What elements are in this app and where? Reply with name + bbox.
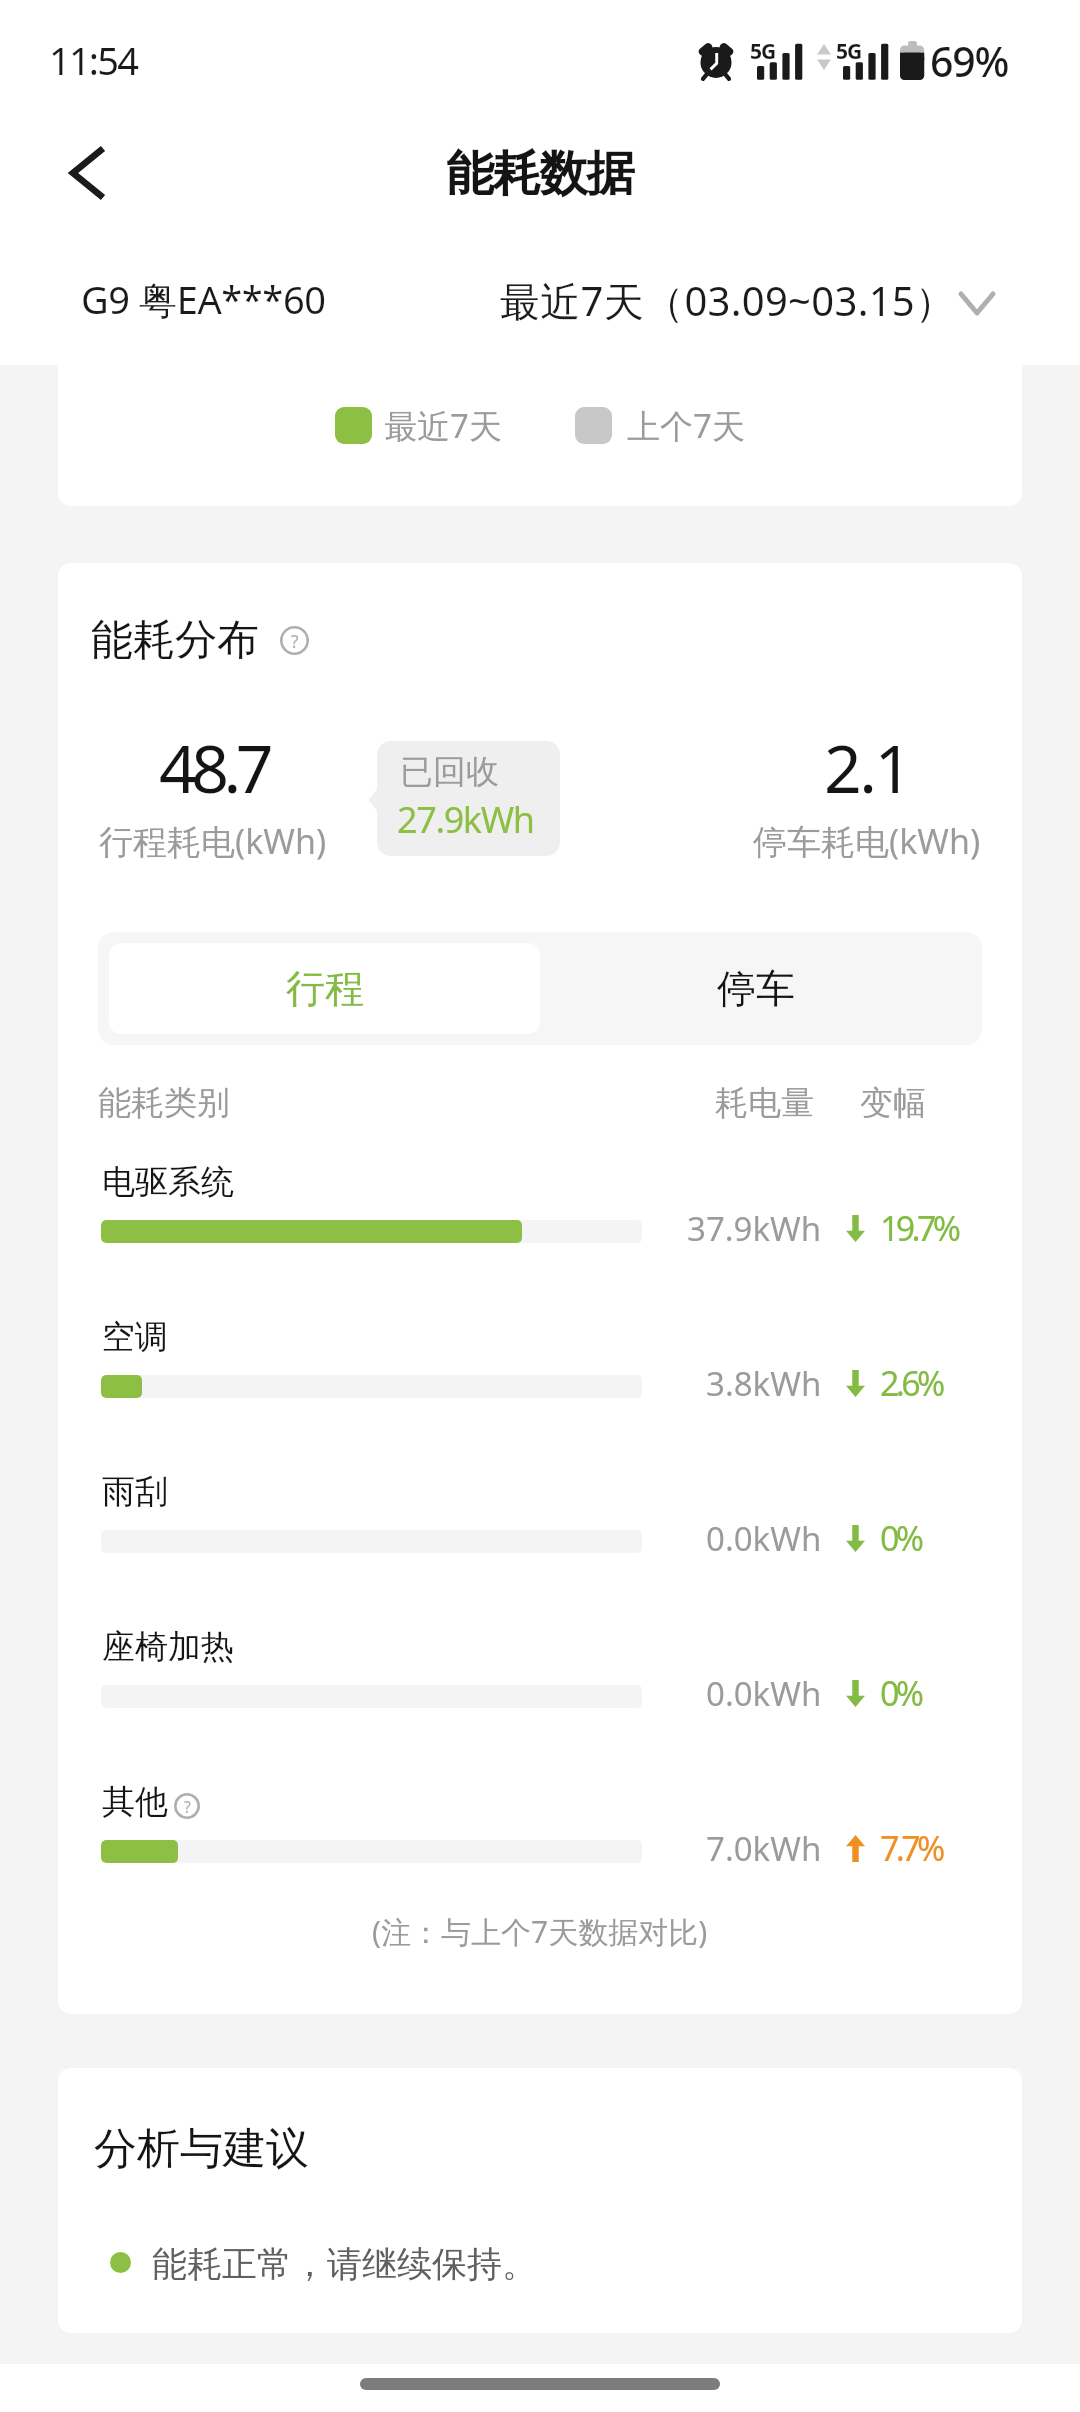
staticText: 其他 (102, 1781, 168, 1823)
staticText: 0% (880, 1670, 921, 1716)
staticText: 7.0kWh (706, 1826, 822, 1871)
staticText: 0.0kWh (706, 1516, 822, 1561)
staticText: 变幅 (860, 1082, 926, 1124)
staticText: 69% (930, 33, 1009, 89)
staticText: 雨刮 (102, 1471, 168, 1513)
staticText: 48.7 (159, 722, 268, 812)
staticText: 行程 (286, 964, 364, 1013)
staticText: 11:54 (49, 34, 138, 86)
staticText: 2.1 (824, 722, 910, 812)
staticText: 19.7% (880, 1205, 958, 1251)
staticText: 能耗类别 (98, 1082, 230, 1124)
staticText: 行程耗电(kWh) (99, 818, 327, 864)
staticText: ? (291, 629, 299, 653)
staticText: 3.8kWh (706, 1361, 822, 1406)
staticText: 7.7% (880, 1825, 942, 1871)
staticText: 能耗分布 (91, 614, 259, 667)
staticText: 分析与建议 (94, 2122, 309, 2176)
staticText: 空调 (102, 1316, 168, 1358)
staticText: 能耗数据 (446, 144, 634, 204)
staticText: 0.0kWh (706, 1671, 822, 1716)
button[interactable]: 停车 (540, 943, 971, 1034)
staticText: 最近7天（03.09~03.15） (500, 273, 956, 328)
staticText: 耗电量 (715, 1082, 814, 1124)
button[interactable]: 最近7天（03.09~03.15） (500, 235, 997, 365)
staticText: 37.9kWh (687, 1206, 822, 1251)
staticText: 座椅加热 (102, 1626, 234, 1668)
staticText: G9 粤EA***60 (81, 273, 326, 325)
staticText: 0% (880, 1515, 921, 1561)
staticText: 最近7天 (384, 403, 502, 448)
staticText: 停车 (717, 964, 795, 1013)
staticText: ? (184, 1796, 191, 1817)
button[interactable]: 行程 (109, 943, 540, 1034)
staticText: 5G (836, 37, 862, 66)
staticText: 5G (750, 37, 776, 66)
staticText: 能耗正常，请继续保持。 (152, 2242, 537, 2286)
staticText: 上个7天 (627, 403, 745, 448)
staticText: (注：与上个7天数据对比) (372, 1911, 708, 1952)
staticText: 已回收 (400, 751, 499, 793)
staticText: 27.9kWh (397, 795, 534, 844)
staticText: 电驱系统 (102, 1161, 234, 1203)
staticText: 停车耗电(kWh) (753, 818, 981, 864)
staticText: 2.6% (880, 1360, 942, 1406)
button[interactable]: Back (40, 125, 136, 221)
